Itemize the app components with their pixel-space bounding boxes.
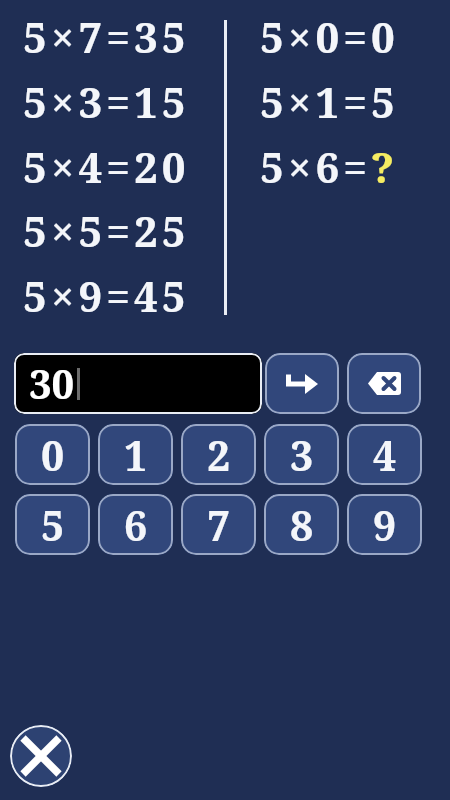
staticText: 5×6=? <box>260 138 399 195</box>
button[interactable] <box>265 353 339 414</box>
staticText: 2 <box>207 427 231 483</box>
staticText: 30 <box>29 356 75 410</box>
staticText: 3 <box>290 427 314 483</box>
staticText: 7 <box>207 497 231 553</box>
staticText: 5×3=15 <box>23 73 190 130</box>
button[interactable]: 9 <box>347 494 422 555</box>
button[interactable]: 1 <box>98 424 173 485</box>
button[interactable]: 2 <box>181 424 256 485</box>
button[interactable]: 3 <box>264 424 339 485</box>
staticText: 5×9=45 <box>23 267 190 324</box>
button[interactable]: 0 <box>15 424 90 485</box>
staticText: 6 <box>124 497 148 553</box>
staticText: 5×4=20 <box>23 138 190 195</box>
staticText: 0 <box>41 427 65 483</box>
staticText: 5×1=5 <box>260 73 399 130</box>
staticText: 4 <box>373 427 397 483</box>
button[interactable] <box>10 725 72 787</box>
button[interactable]: 6 <box>98 494 173 555</box>
staticText: 5×5=25 <box>23 202 190 259</box>
button[interactable]: 8 <box>264 494 339 555</box>
button[interactable]: 5 <box>15 494 90 555</box>
staticText: 5×7=35 <box>23 8 190 65</box>
button[interactable] <box>347 353 421 414</box>
staticText: 1 <box>124 427 148 483</box>
button[interactable]: 7 <box>181 494 256 555</box>
button[interactable]: 30 <box>14 353 262 414</box>
staticText: 9 <box>373 497 397 553</box>
staticText: 5 <box>41 497 65 553</box>
staticText: 5×0=0 <box>260 8 399 65</box>
staticText: 8 <box>290 497 314 553</box>
button[interactable]: 4 <box>347 424 422 485</box>
